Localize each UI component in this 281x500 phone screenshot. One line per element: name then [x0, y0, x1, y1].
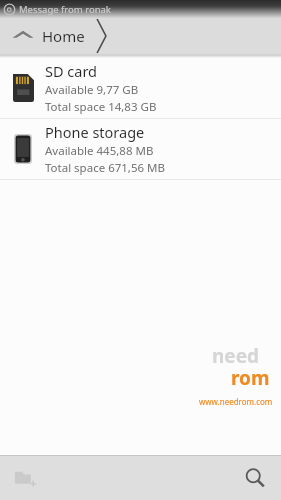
staticText: Phone storage: [45, 122, 145, 142]
staticText: Home: [42, 26, 85, 46]
button[interactable]: Search: [229, 456, 281, 500]
staticText: Total space 671,56 MB: [45, 160, 166, 176]
staticText: Message from ronak: [19, 3, 111, 16]
staticText: Available 9,77 GB: [45, 82, 139, 98]
staticText: SD card: [45, 61, 98, 81]
button[interactable]: New folder: [0, 456, 52, 500]
button[interactable]: SD card: [0, 58, 281, 118]
staticText: Available 445,88 MB: [45, 143, 154, 159]
button[interactable]: Phone storage: [0, 119, 281, 179]
staticText: www.needrom.com: [199, 396, 273, 407]
staticText: Total space 14,83 GB: [45, 99, 157, 115]
button[interactable]: Home: [0, 18, 91, 54]
staticText: need: [212, 343, 260, 369]
staticText: rom: [231, 365, 270, 391]
